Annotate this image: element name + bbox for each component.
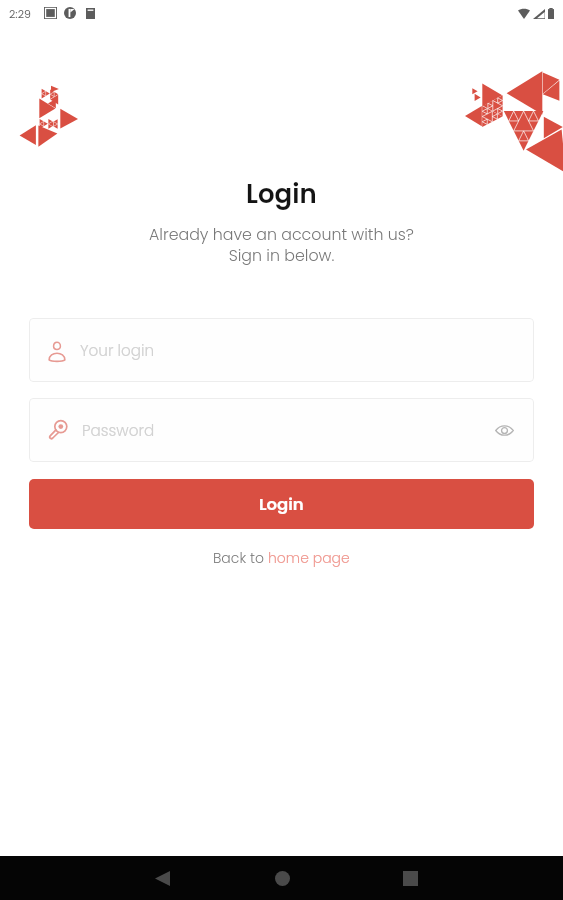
staticText: Your login — [80, 340, 155, 361]
staticText: Password — [82, 420, 155, 441]
staticText: Login — [246, 176, 317, 212]
staticText: Back to — [213, 548, 268, 568]
button[interactable]: home page — [268, 548, 350, 568]
button[interactable]: Back — [148, 864, 176, 892]
button[interactable]: Home — [268, 864, 296, 892]
staticText: Already have an account with us? Sign in… — [149, 223, 414, 266]
staticText: home page — [268, 548, 350, 568]
button[interactable]: Recents — [396, 864, 424, 892]
button[interactable]: Login — [29, 479, 534, 529]
staticText: 2:29 — [9, 6, 31, 21]
button[interactable]: Password — [29, 398, 534, 462]
button[interactable]: Your login — [29, 318, 534, 382]
button[interactable]: Show password — [491, 417, 517, 443]
staticText: Login — [259, 493, 304, 516]
